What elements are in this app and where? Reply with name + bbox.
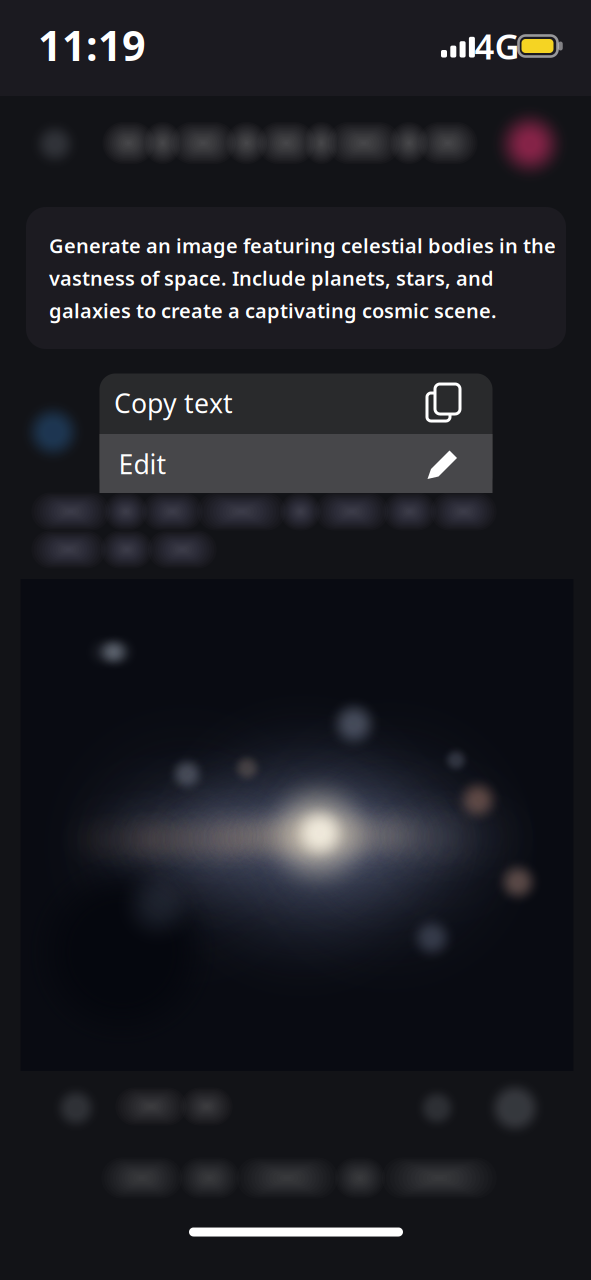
button[interactable]: Edit [99,434,492,493]
button[interactable]: Copy text [99,374,492,433]
staticText: Copy text [114,385,233,421]
staticText: Generate an image featuring celestial bo… [49,232,556,324]
staticText: Edit [118,446,166,482]
staticText: 11:19 [38,18,146,72]
staticText: 4G [474,23,519,69]
